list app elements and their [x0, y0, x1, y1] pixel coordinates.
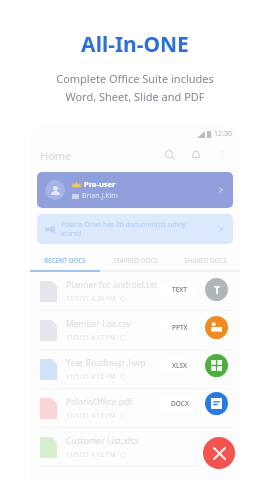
- staticText: 11/1/21 4:12 PM: [66, 372, 116, 381]
- button[interactable]: New TEXT document: [205, 278, 228, 301]
- staticText: Planner for android.txt: [66, 279, 157, 291]
- staticText: All-In-ONE: [81, 30, 189, 59]
- button[interactable]: More options: [214, 147, 230, 163]
- staticText: 11/1/21 4:17 PM: [66, 333, 116, 342]
- staticText: 11/1/21 4:12 PM: [66, 411, 116, 420]
- staticText: STARRED DOCS: [113, 256, 158, 264]
- button[interactable]: Planner for android.txt: [30, 272, 240, 310]
- staticText: SHARED DOCS: [184, 256, 227, 264]
- button[interactable]: Member List.csv: [30, 311, 240, 349]
- staticText: Polaris Drive has 26 document(s) safely …: [61, 220, 217, 238]
- staticText: Pro-user: [84, 179, 116, 189]
- button[interactable]: New XLSX document: [205, 354, 228, 377]
- staticText: PPTX: [172, 323, 188, 332]
- staticText: PolarisOffice.pdf: [66, 396, 133, 408]
- staticText: Member List.csv: [66, 318, 131, 330]
- button[interactable]: New DOCX document: [205, 392, 228, 415]
- staticText: Brian.J.Kim: [82, 191, 118, 201]
- button[interactable]: XLSX: [160, 358, 199, 373]
- button[interactable]: Pro-user: [37, 172, 233, 208]
- button[interactable]: Search: [162, 147, 178, 163]
- staticText: 11/1/21 4:12 PM: [66, 450, 116, 459]
- staticText: 11/1/21 4:36 PM: [66, 294, 116, 303]
- staticText: 12:30: [214, 129, 232, 139]
- staticText: Word, Sheet, Slide and PDF: [65, 89, 205, 104]
- button[interactable]: PolarisOffice.pdf: [30, 389, 240, 427]
- staticText: Complete Office Suite includes: [56, 71, 214, 86]
- button[interactable]: Close menu: [203, 437, 235, 469]
- staticText: T: [214, 283, 220, 297]
- button[interactable]: PPTX: [160, 320, 199, 335]
- button[interactable]: Customer List.xlsx: [30, 428, 240, 466]
- button[interactable]: New PPTX document: [205, 316, 228, 339]
- button[interactable]: SHARED DOCS: [170, 250, 240, 270]
- button[interactable]: STARRED DOCS: [100, 250, 170, 270]
- button[interactable]: Notifications: [188, 147, 204, 163]
- staticText: Year Roadmap .hwp: [66, 357, 146, 369]
- button[interactable]: DOCX: [160, 396, 199, 411]
- staticText: XLSX: [172, 361, 187, 370]
- button[interactable]: Polaris Drive has 26 document(s) safely …: [37, 214, 233, 244]
- staticText: Customer List.xlsx: [66, 435, 139, 447]
- staticText: DOCX: [171, 399, 189, 408]
- button[interactable]: RECENT DOCS: [30, 250, 100, 270]
- staticText: TEXT: [172, 285, 187, 294]
- staticText: RECENT DOCS: [44, 256, 86, 264]
- button[interactable]: Year Roadmap .hwp: [30, 350, 240, 388]
- button[interactable]: TEXT: [160, 282, 199, 297]
- staticText: Home: [40, 148, 162, 163]
